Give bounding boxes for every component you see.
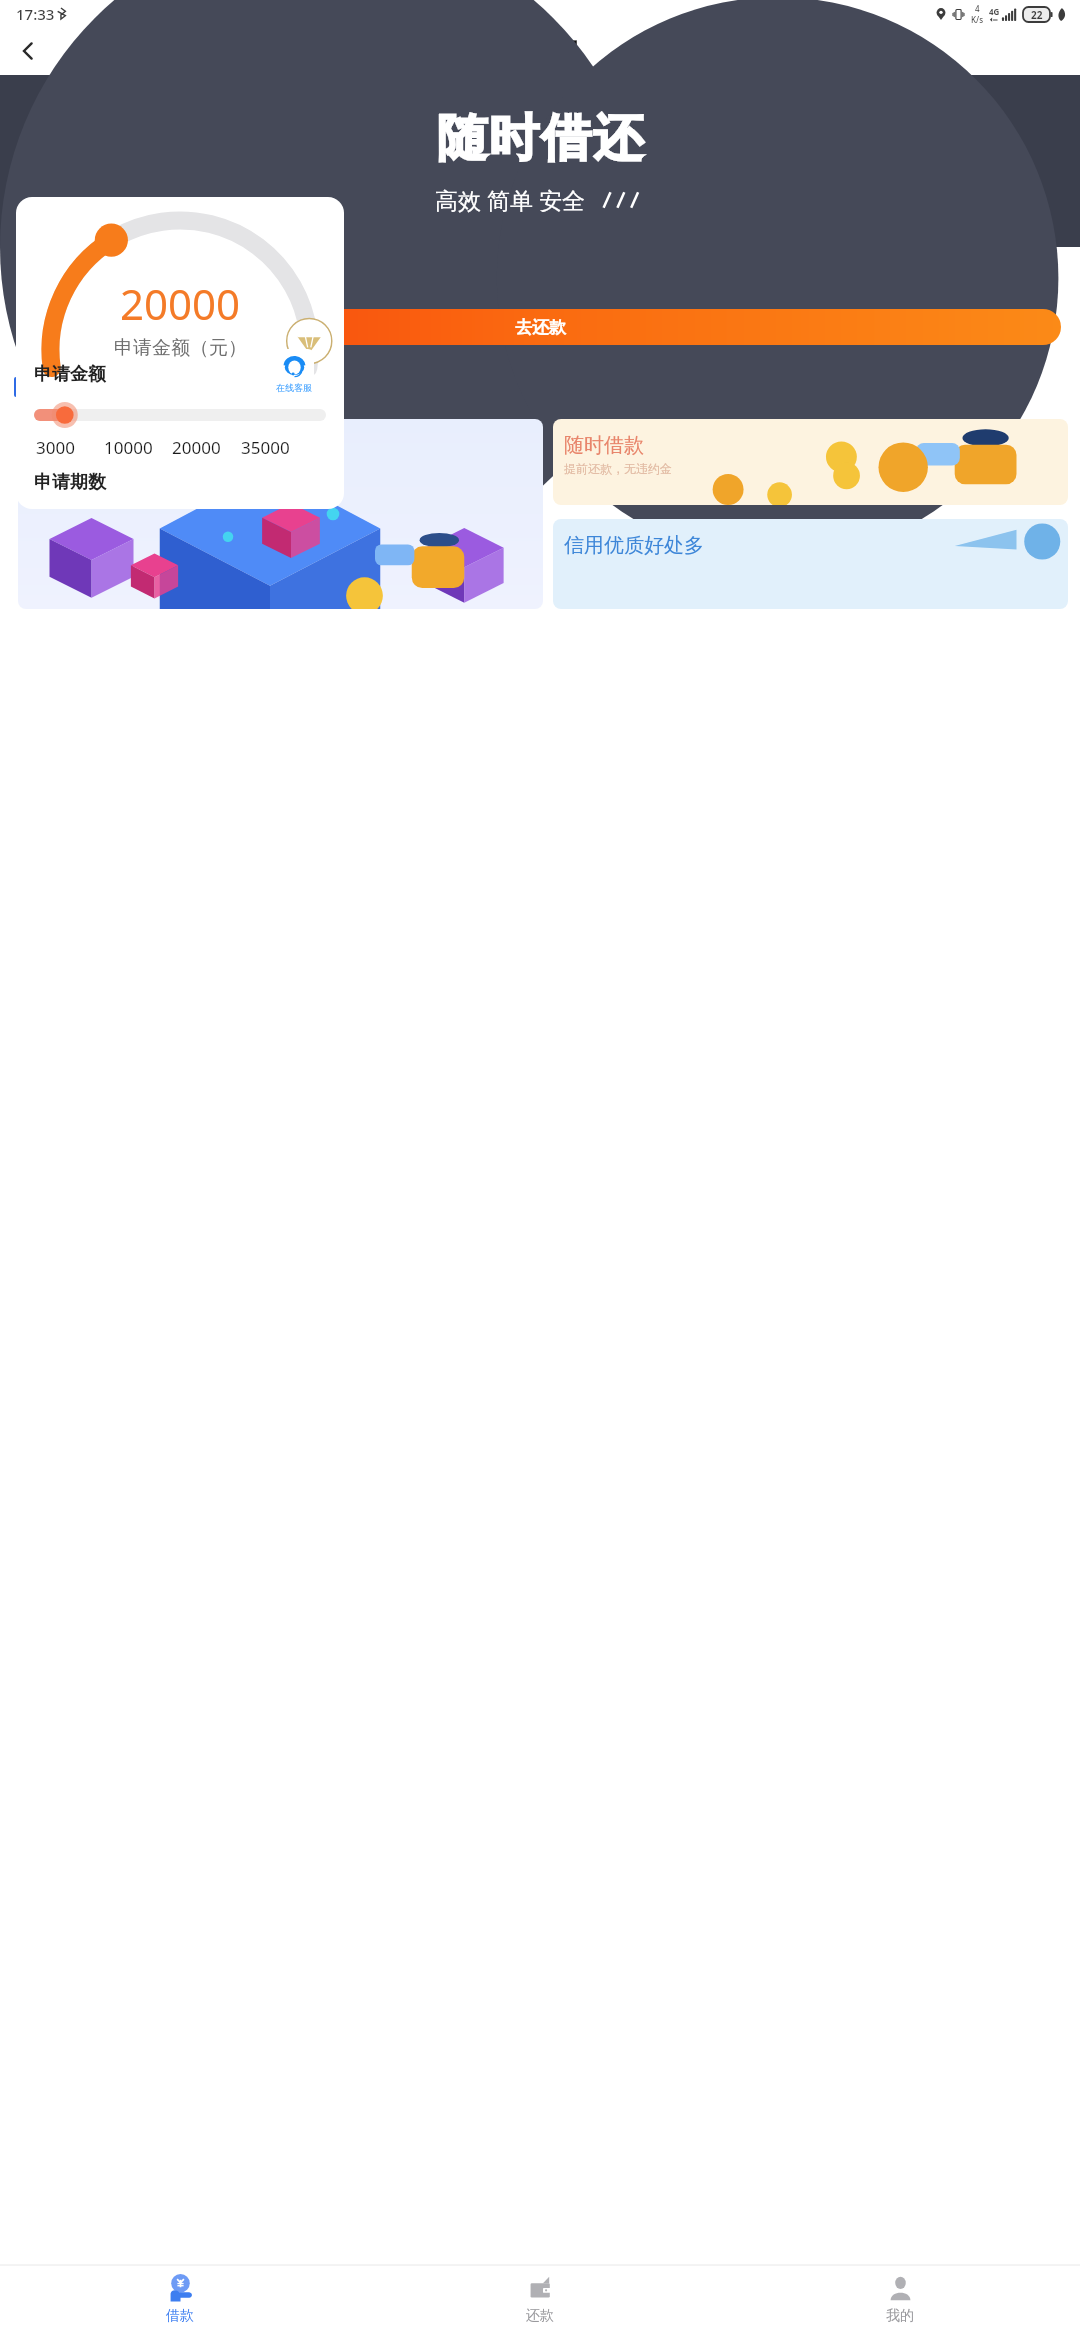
staticText: 高效 简单 安全 [435,184,585,215]
staticText: 申请金额（元） [114,336,247,360]
staticText: 十分钟放款 [32,478,117,499]
button[interactable]: 1分钟认证 [18,419,543,609]
staticText: 在线客服 [276,382,312,393]
staticText: 申请金额 [34,363,106,386]
staticText: 4 [975,3,980,14]
staticText: 申请期数 [34,471,106,494]
staticText: 【普融花】 [493,39,588,63]
staticText: 10000 [104,436,153,459]
staticText: 35000 [241,436,290,459]
button[interactable]: 还款 [360,2273,720,2340]
staticText: 22 [1031,8,1043,22]
staticText: 20000 [172,436,221,459]
button[interactable]: 信用优质好处多 [553,519,1068,609]
staticText: 去还款 [515,317,566,338]
staticText: 信用优质好处多 [564,533,704,558]
button[interactable]: 在线客服 [274,349,314,398]
staticText: 随时借还 [436,107,644,170]
staticText: 产品亮点 [28,375,104,399]
button[interactable]: 借款 [0,2273,360,2340]
button[interactable] [34,402,326,428]
staticText: 借款 [166,2307,194,2325]
staticText: 3000 [36,436,75,459]
staticText: K/s [971,14,984,25]
staticText: 20000 [120,275,241,332]
staticText: 1分钟认证 [32,441,138,472]
staticText: 还款 [526,2307,554,2325]
staticText: 4G [989,6,1000,17]
staticText: 提前还款，无违约金 [564,461,672,476]
button[interactable]: Back [6,29,50,73]
button[interactable]: 去还款 [19,309,1061,345]
staticText: 我的 [886,2307,914,2325]
staticText: 17:33 [16,4,55,24]
staticText: 随时借款 [564,433,644,458]
button[interactable]: 随时借款 [553,419,1068,505]
button[interactable]: 我的 [720,2273,1080,2340]
button[interactable]: 20000 [16,197,344,509]
